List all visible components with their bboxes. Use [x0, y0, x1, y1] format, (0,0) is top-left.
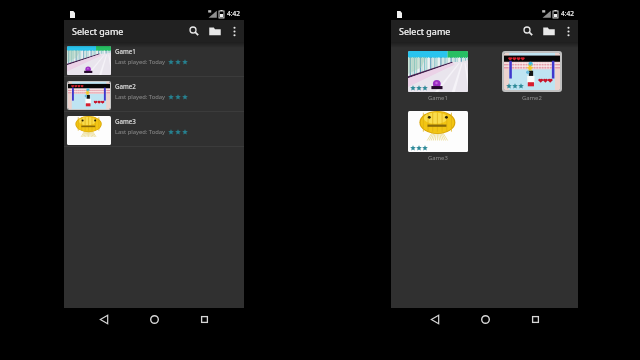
button[interactable]: More options: [560, 23, 576, 39]
staticText: Last played: Today: [115, 58, 165, 66]
button[interactable]: Browse folder: [540, 22, 558, 40]
staticText: Last played: Today: [115, 128, 165, 136]
staticText: Game1: [428, 94, 448, 102]
staticText: Game3: [115, 117, 136, 125]
button[interactable]: Game3: [64, 112, 244, 147]
staticText: Game2: [522, 94, 542, 102]
staticText: Select game: [72, 25, 124, 37]
staticText: 4:42: [227, 9, 240, 18]
button[interactable]: Game2: [64, 77, 244, 112]
button[interactable]: Home: [129, 310, 179, 328]
staticText: Game3: [428, 154, 448, 162]
staticText: Select game: [399, 25, 451, 37]
button[interactable]: Back: [79, 310, 129, 328]
button[interactable]: Recent apps: [510, 310, 560, 328]
button[interactable]: Back: [410, 310, 460, 328]
button[interactable]: Game3: [408, 111, 468, 162]
button[interactable]: Home: [460, 310, 510, 328]
button[interactable]: Search: [185, 22, 203, 40]
button[interactable]: Game2: [502, 51, 562, 102]
button[interactable]: Browse folder: [206, 22, 224, 40]
staticText: Game2: [115, 82, 136, 90]
button[interactable]: Game1: [64, 42, 244, 77]
button[interactable]: Search: [519, 22, 537, 40]
staticText: Last played: Today: [115, 93, 165, 101]
button[interactable]: Recent apps: [179, 310, 229, 328]
staticText: Game1: [115, 47, 136, 55]
button[interactable]: Game1: [408, 51, 468, 102]
staticText: 4:42: [561, 9, 574, 18]
button[interactable]: More options: [226, 23, 242, 39]
